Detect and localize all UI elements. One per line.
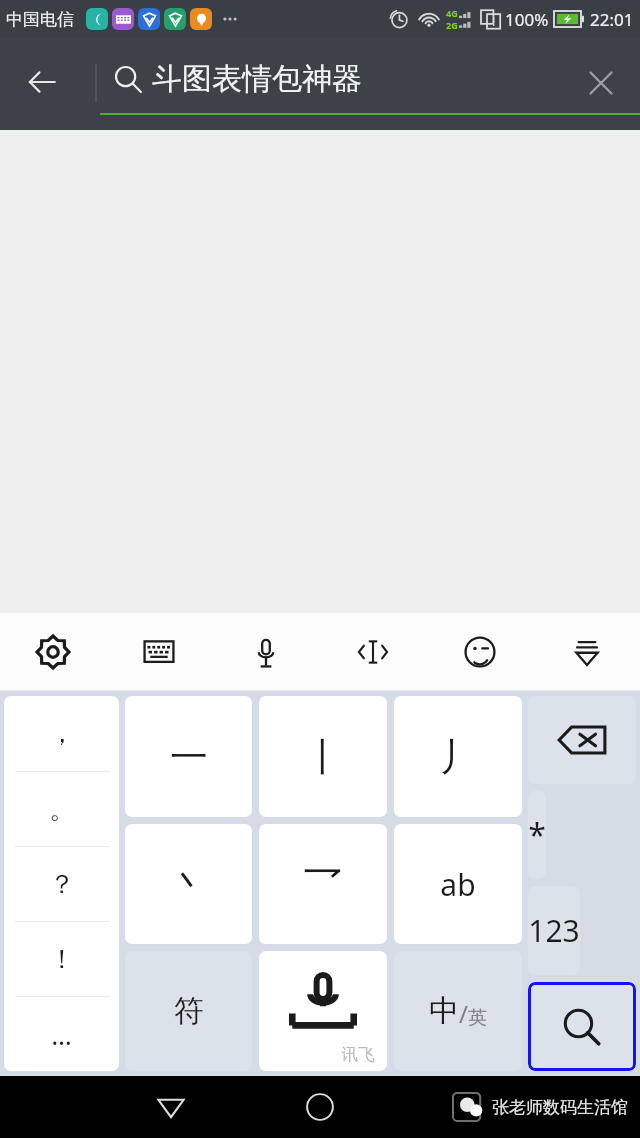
button[interactable]: 符 (125, 951, 252, 1071)
staticText: ab (440, 864, 476, 905)
button[interactable]: Back (6, 46, 78, 118)
button[interactable]: 一 (125, 696, 252, 817)
staticText: 。 (49, 793, 75, 826)
button[interactable]: * (528, 791, 546, 879)
button[interactable]: Back (140, 1076, 202, 1138)
button[interactable]: 丨 (259, 696, 387, 817)
staticText: * (528, 813, 546, 857)
staticText: 2G (446, 19, 458, 31)
staticText: 张老师数码生活馆 (492, 1097, 628, 1118)
button[interactable]: Move cursor (319, 613, 426, 691)
button[interactable]: Hide keyboard (533, 613, 640, 691)
staticText: 丿 (439, 733, 477, 781)
button[interactable]: 丶 (125, 824, 252, 944)
staticText: / (459, 997, 468, 1030)
staticText: ？ (49, 868, 75, 901)
button[interactable]: Emoji (426, 613, 533, 691)
button[interactable]: Keyboard layout (106, 613, 212, 691)
staticText: … (51, 1017, 72, 1052)
button[interactable]: Voice input (212, 613, 319, 691)
button[interactable]: 丿 (394, 696, 522, 817)
staticText: 符 (174, 992, 204, 1030)
button[interactable]: Home (289, 1076, 351, 1138)
button[interactable]: Delete (528, 696, 636, 784)
staticText: 乛 (304, 860, 342, 908)
staticText: 斗图表情包神器 (152, 60, 362, 98)
staticText: ， (49, 717, 75, 750)
staticText: 100% (505, 8, 549, 31)
staticText: 123 (528, 910, 580, 951)
staticText: 中国电信 (6, 9, 74, 30)
button[interactable]: Search (528, 982, 636, 1071)
staticText: ！ (49, 943, 75, 976)
staticText: 一 (170, 733, 208, 781)
button[interactable]: ， (4, 696, 119, 1071)
button[interactable]: 中 (394, 951, 522, 1071)
staticText: 中 (429, 992, 459, 1030)
button[interactable]: 123 (528, 886, 580, 975)
button[interactable]: Clear (566, 48, 636, 118)
button[interactable]: Settings (0, 613, 106, 691)
staticText: 22:01 (590, 8, 634, 31)
button[interactable]: Space (259, 951, 387, 1071)
button[interactable]: ab (394, 824, 522, 944)
staticText: 丨 (304, 733, 342, 781)
staticText: 丶 (170, 860, 208, 908)
button[interactable]: 乛 (259, 824, 387, 944)
staticText: 4G (446, 7, 458, 19)
staticText: 英 (468, 1006, 487, 1030)
staticText: 讯飞 (341, 1044, 375, 1065)
